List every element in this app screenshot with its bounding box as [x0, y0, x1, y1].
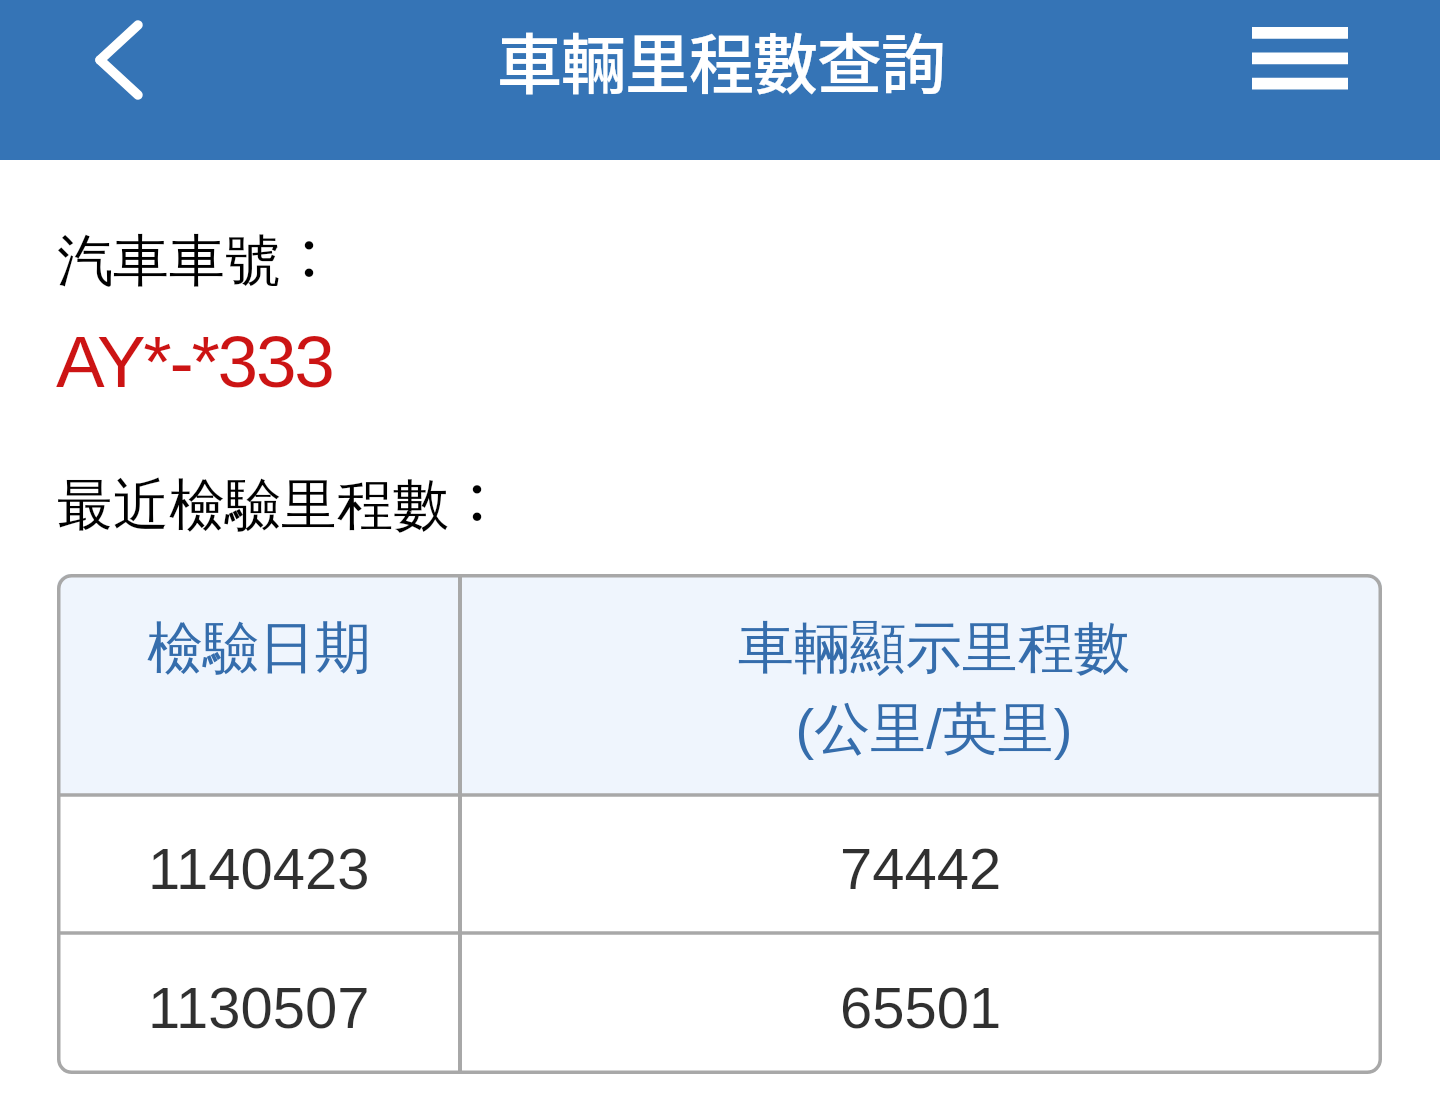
button[interactable]: Menu	[1232, 7, 1368, 111]
staticText: 車輛顯示里程數 (公里/英里)	[738, 613, 1130, 764]
staticText: 1130507	[148, 975, 370, 1040]
staticText: AY*-*333	[56, 321, 333, 403]
staticText: 汽車車號：	[57, 215, 337, 297]
button[interactable]: Back	[58, 1, 180, 119]
staticText: 74442	[840, 836, 1002, 901]
staticText: 最近檢驗里程數：	[57, 459, 505, 541]
staticText: 1140423	[148, 836, 370, 901]
staticText: 檢驗日期	[147, 613, 371, 684]
staticText: 車輛里程數查詢	[497, 13, 946, 107]
staticText: 65501	[840, 975, 1002, 1040]
